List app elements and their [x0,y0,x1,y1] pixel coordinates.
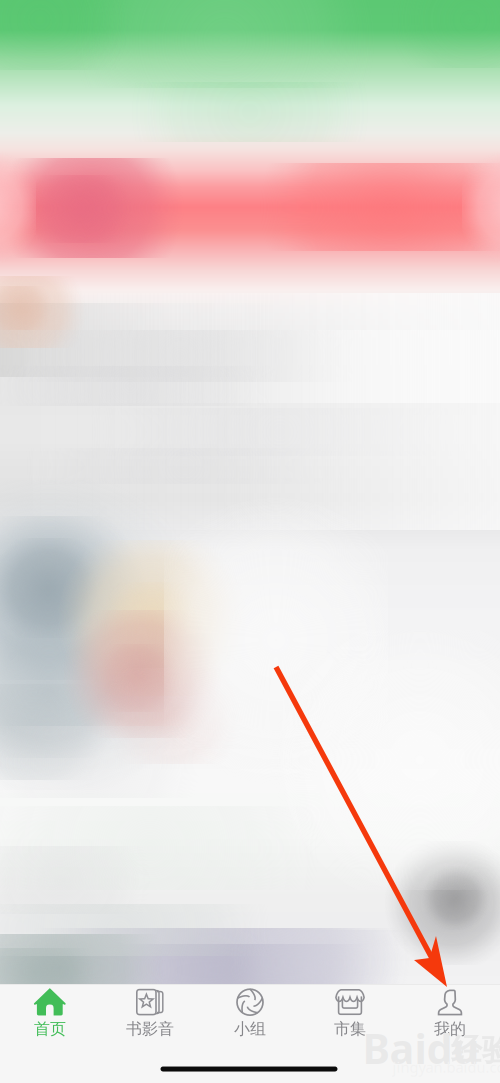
staticText: 首页 [34,1019,66,1039]
button[interactable]: 我的 [400,981,500,1043]
staticText: 书影音 [126,1019,174,1039]
staticText: jingyan.baidu.com [392,1057,500,1077]
button[interactable]: 首页 [0,981,100,1043]
staticText: 经验 [451,1031,500,1069]
staticText: 市集 [334,1019,366,1039]
staticText: Baidu [362,1021,479,1075]
button[interactable]: 小组 [200,981,300,1043]
button[interactable]: 市集 [300,981,400,1043]
staticText: 我的 [434,1019,466,1039]
staticText: 小组 [234,1019,266,1039]
button[interactable]: 书影音 [100,981,200,1043]
